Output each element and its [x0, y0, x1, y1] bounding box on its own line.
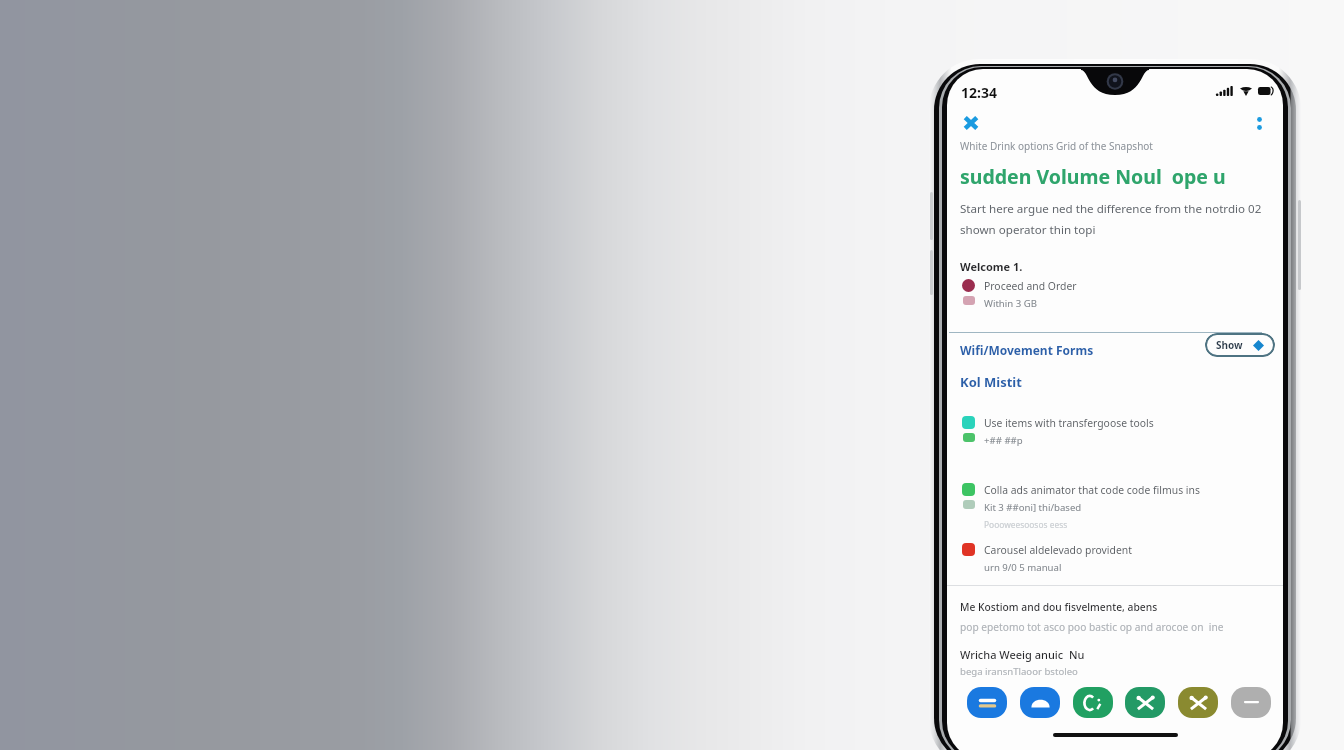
- staticText: 12:34: [961, 83, 997, 99]
- staticText: +## ##p: [984, 434, 1023, 447]
- button[interactable]: Phone: [1073, 687, 1113, 718]
- staticText: Welcome 1.: [960, 259, 1023, 274]
- staticText: urn 9/0 5 manual: [984, 561, 1062, 574]
- staticText: Colla ads animator that code code filmus…: [984, 483, 1200, 497]
- button[interactable]: Tools: [1125, 687, 1165, 718]
- button[interactable]: Wallet: [967, 687, 1007, 718]
- button[interactable]: More: [1231, 687, 1271, 718]
- button[interactable]: Carousel aldelevado provident: [947, 543, 1283, 574]
- button[interactable]: Messages: [1020, 687, 1060, 718]
- staticText: White Drink options Grid of the Snapshot: [960, 139, 1153, 153]
- staticText: Me Kostiom and dou fisvelmente, abens: [960, 600, 1158, 614]
- button[interactable]: Wricha Weeig anuic Nu: [947, 644, 1283, 684]
- staticText: Start here argue ned the difference from…: [960, 201, 1262, 237]
- staticText: bega iransnTlaoor bstoleo: [960, 665, 1078, 678]
- button[interactable]: Me Kostiom and dou fisvelmente, abens: [947, 597, 1283, 639]
- button[interactable]: More options: [1247, 111, 1271, 135]
- button[interactable]: Wifi/Movement Forms: [960, 342, 1094, 358]
- button[interactable]: Show: [1205, 333, 1275, 357]
- staticText: Poooweesoosos eess: [984, 519, 1068, 530]
- button[interactable]: Proceed and Order: [947, 279, 1283, 310]
- staticText: Within 3 GB: [984, 297, 1037, 310]
- staticText: Show: [1216, 338, 1243, 352]
- button[interactable]: Settings: [1178, 687, 1218, 718]
- button[interactable]: Shuffle: [959, 111, 983, 135]
- staticText: Proceed and Order: [984, 279, 1077, 293]
- staticText: Carousel aldelevado provident: [984, 543, 1132, 557]
- button[interactable]: Colla ads animator that code code filmus…: [947, 483, 1283, 530]
- button[interactable]: Kol Mistit: [947, 373, 1035, 391]
- button[interactable]: Use items with transfergoose tools: [947, 416, 1283, 447]
- staticText: pop epetomo tot asco poo bastic op and a…: [960, 620, 1224, 634]
- staticText: Use items with transfergoose tools: [984, 416, 1154, 430]
- staticText: Wricha Weeig anuic Nu: [960, 647, 1085, 662]
- staticText: sudden Volume Noul ope u: [960, 163, 1226, 190]
- staticText: Kit 3 ##oni] thi/based: [984, 501, 1082, 514]
